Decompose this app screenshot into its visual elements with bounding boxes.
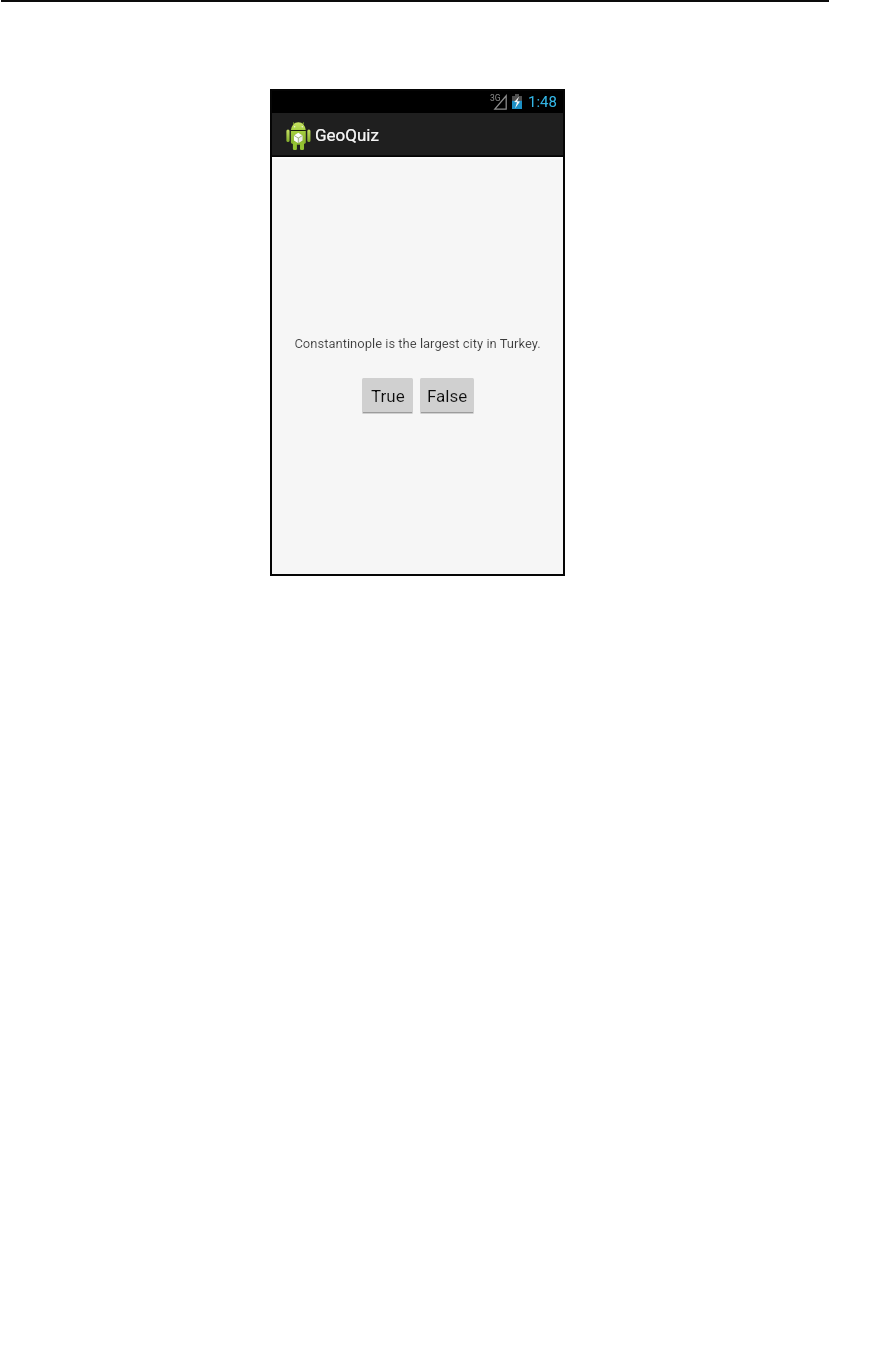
- staticText: True: [371, 386, 405, 406]
- button[interactable]: False: [420, 378, 474, 414]
- staticText: False: [427, 386, 468, 406]
- button[interactable]: App icon: [272, 113, 392, 157]
- button[interactable]: True: [362, 378, 413, 414]
- staticText: 3G: [490, 93, 501, 103]
- other: App icon: [286, 121, 311, 150]
- staticText: Constantinople is the largest city in Tu…: [294, 336, 541, 351]
- staticText: GeoQuiz: [315, 125, 379, 145]
- staticText: 1:48: [528, 93, 557, 111]
